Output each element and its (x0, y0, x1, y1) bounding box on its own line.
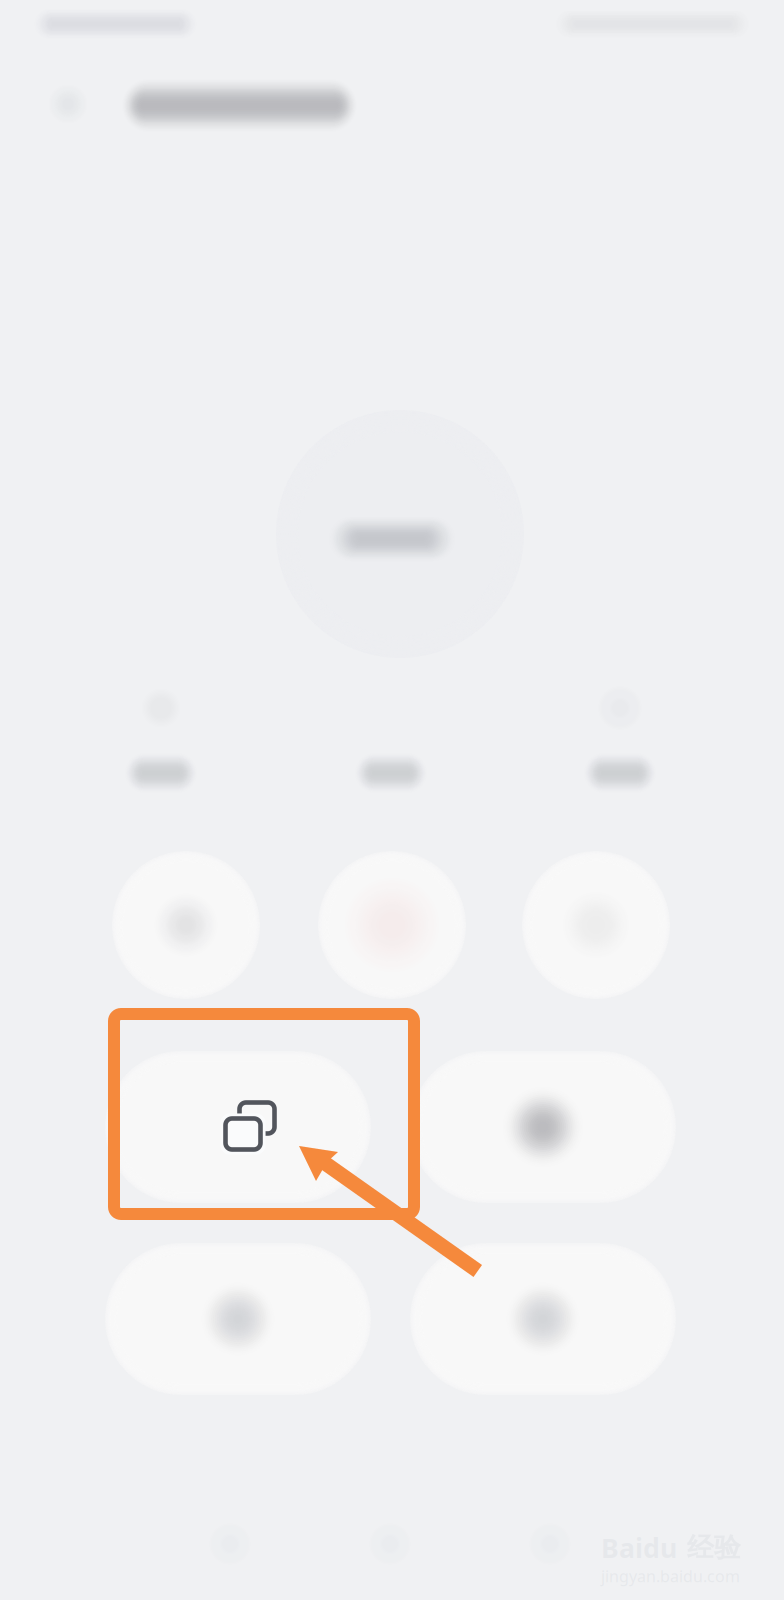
staticText: 经验 (687, 1531, 741, 1564)
staticText: Baidu (601, 1530, 677, 1565)
button[interactable]: Mute (95, 677, 227, 797)
button[interactable]: Transfer (410, 1243, 676, 1395)
button[interactable]: End call (318, 851, 466, 999)
button[interactable]: Speaker (554, 677, 686, 797)
button[interactable]: Add call (410, 1051, 676, 1203)
button[interactable]: Keypad (325, 677, 457, 797)
button[interactable]: Duplicate (105, 1051, 371, 1203)
button[interactable]: Mute (112, 851, 260, 999)
button[interactable]: Speaker (522, 851, 670, 999)
button[interactable]: Screen title (119, 75, 360, 136)
button[interactable]: Hold (105, 1243, 371, 1395)
